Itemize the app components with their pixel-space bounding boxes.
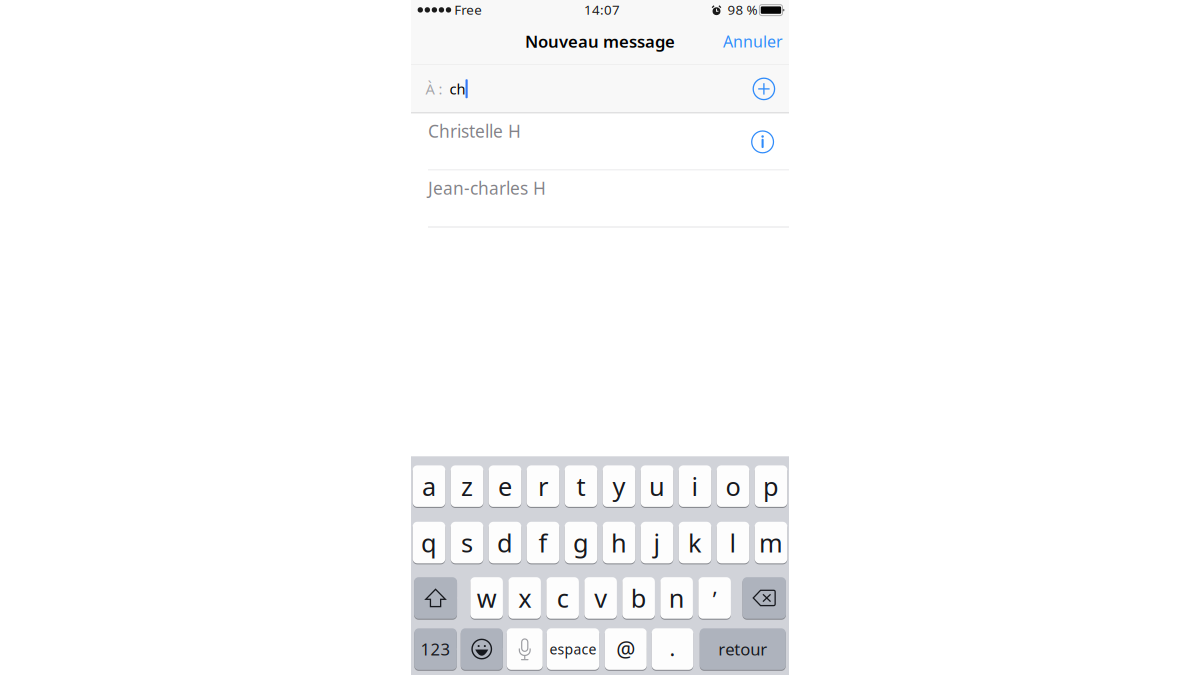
staticText: 14:07 xyxy=(584,1,620,19)
button[interactable]: f xyxy=(527,521,559,564)
staticText: b xyxy=(631,581,647,615)
staticText: d xyxy=(497,525,513,560)
staticText: c xyxy=(557,581,569,615)
button[interactable]: Annuler xyxy=(714,19,791,63)
button[interactable]: Emoji xyxy=(461,628,503,670)
staticText: Nouveau message xyxy=(525,30,675,52)
staticText: a xyxy=(422,469,436,503)
staticText: À : xyxy=(425,79,442,99)
button[interactable]: espace xyxy=(547,628,599,670)
staticText: x xyxy=(518,581,531,615)
button[interactable]: h xyxy=(603,521,635,564)
button[interactable]: e xyxy=(489,465,521,507)
staticText: ’ xyxy=(713,585,717,614)
button[interactable]: ’ xyxy=(698,577,731,619)
staticText: 123 xyxy=(420,638,450,660)
button[interactable]: . xyxy=(652,628,693,670)
button[interactable]: v xyxy=(584,577,617,619)
staticText: g xyxy=(573,525,589,560)
button[interactable]: Dictée xyxy=(507,628,543,670)
staticText: i xyxy=(691,469,698,503)
staticText: ch xyxy=(449,79,465,99)
staticText: p xyxy=(763,469,779,503)
button[interactable]: y xyxy=(603,465,635,507)
button[interactable]: Majuscule xyxy=(414,577,457,619)
staticText: h xyxy=(611,525,627,560)
staticText: 98 % xyxy=(727,1,757,19)
button[interactable]: p xyxy=(755,465,787,507)
button[interactable]: u xyxy=(641,465,673,507)
staticText: y xyxy=(612,469,625,503)
button[interactable]: Christelle H xyxy=(411,113,789,169)
button[interactable]: m xyxy=(755,521,787,564)
button[interactable]: j xyxy=(641,521,673,564)
staticText: r xyxy=(538,469,548,503)
button[interactable]: Jean-charles H xyxy=(411,170,789,226)
button[interactable]: retour xyxy=(700,628,786,670)
staticText: w xyxy=(477,581,497,615)
staticText: o xyxy=(725,469,740,503)
button[interactable]: c xyxy=(546,577,579,619)
button[interactable]: i xyxy=(679,465,711,507)
staticText: Christelle H xyxy=(428,119,521,143)
staticText: z xyxy=(461,469,473,503)
button[interactable]: Ajouter un contact xyxy=(746,71,782,107)
button[interactable]: q xyxy=(413,521,445,564)
staticText: Free xyxy=(454,1,482,19)
staticText: . xyxy=(669,633,675,663)
staticText: f xyxy=(538,525,547,560)
button[interactable]: n xyxy=(660,577,693,619)
staticText: k xyxy=(688,525,702,560)
staticText: j xyxy=(653,525,660,560)
staticText: Jean-charles H xyxy=(428,176,546,200)
button[interactable]: b xyxy=(622,577,655,619)
staticText: v xyxy=(594,581,607,615)
button[interactable]: s xyxy=(451,521,483,564)
staticText: t xyxy=(576,469,585,503)
staticText: @ xyxy=(616,634,635,664)
staticText: Annuler xyxy=(723,30,783,52)
staticText: s xyxy=(461,525,473,560)
staticText: m xyxy=(759,525,783,560)
button[interactable]: d xyxy=(489,521,521,564)
button[interactable]: t xyxy=(565,465,597,507)
staticText: n xyxy=(669,581,685,615)
button[interactable]: o xyxy=(717,465,749,507)
button[interactable]: @ xyxy=(605,628,647,670)
staticText: l xyxy=(729,525,736,560)
button[interactable]: z xyxy=(451,465,483,507)
staticText: u xyxy=(649,469,665,503)
button[interactable]: x xyxy=(508,577,541,619)
button[interactable]: Supprimer xyxy=(742,577,786,619)
staticText: q xyxy=(421,525,437,560)
button[interactable]: g xyxy=(565,521,597,564)
button[interactable]: 123 xyxy=(414,628,457,670)
button[interactable]: r xyxy=(527,465,559,507)
button[interactable]: a xyxy=(413,465,445,507)
staticText: espace xyxy=(549,639,596,659)
staticText: retour xyxy=(718,638,767,660)
staticText: e xyxy=(498,469,512,503)
button[interactable]: k xyxy=(679,521,711,564)
button[interactable]: l xyxy=(717,521,749,564)
button[interactable]: w xyxy=(470,577,503,619)
